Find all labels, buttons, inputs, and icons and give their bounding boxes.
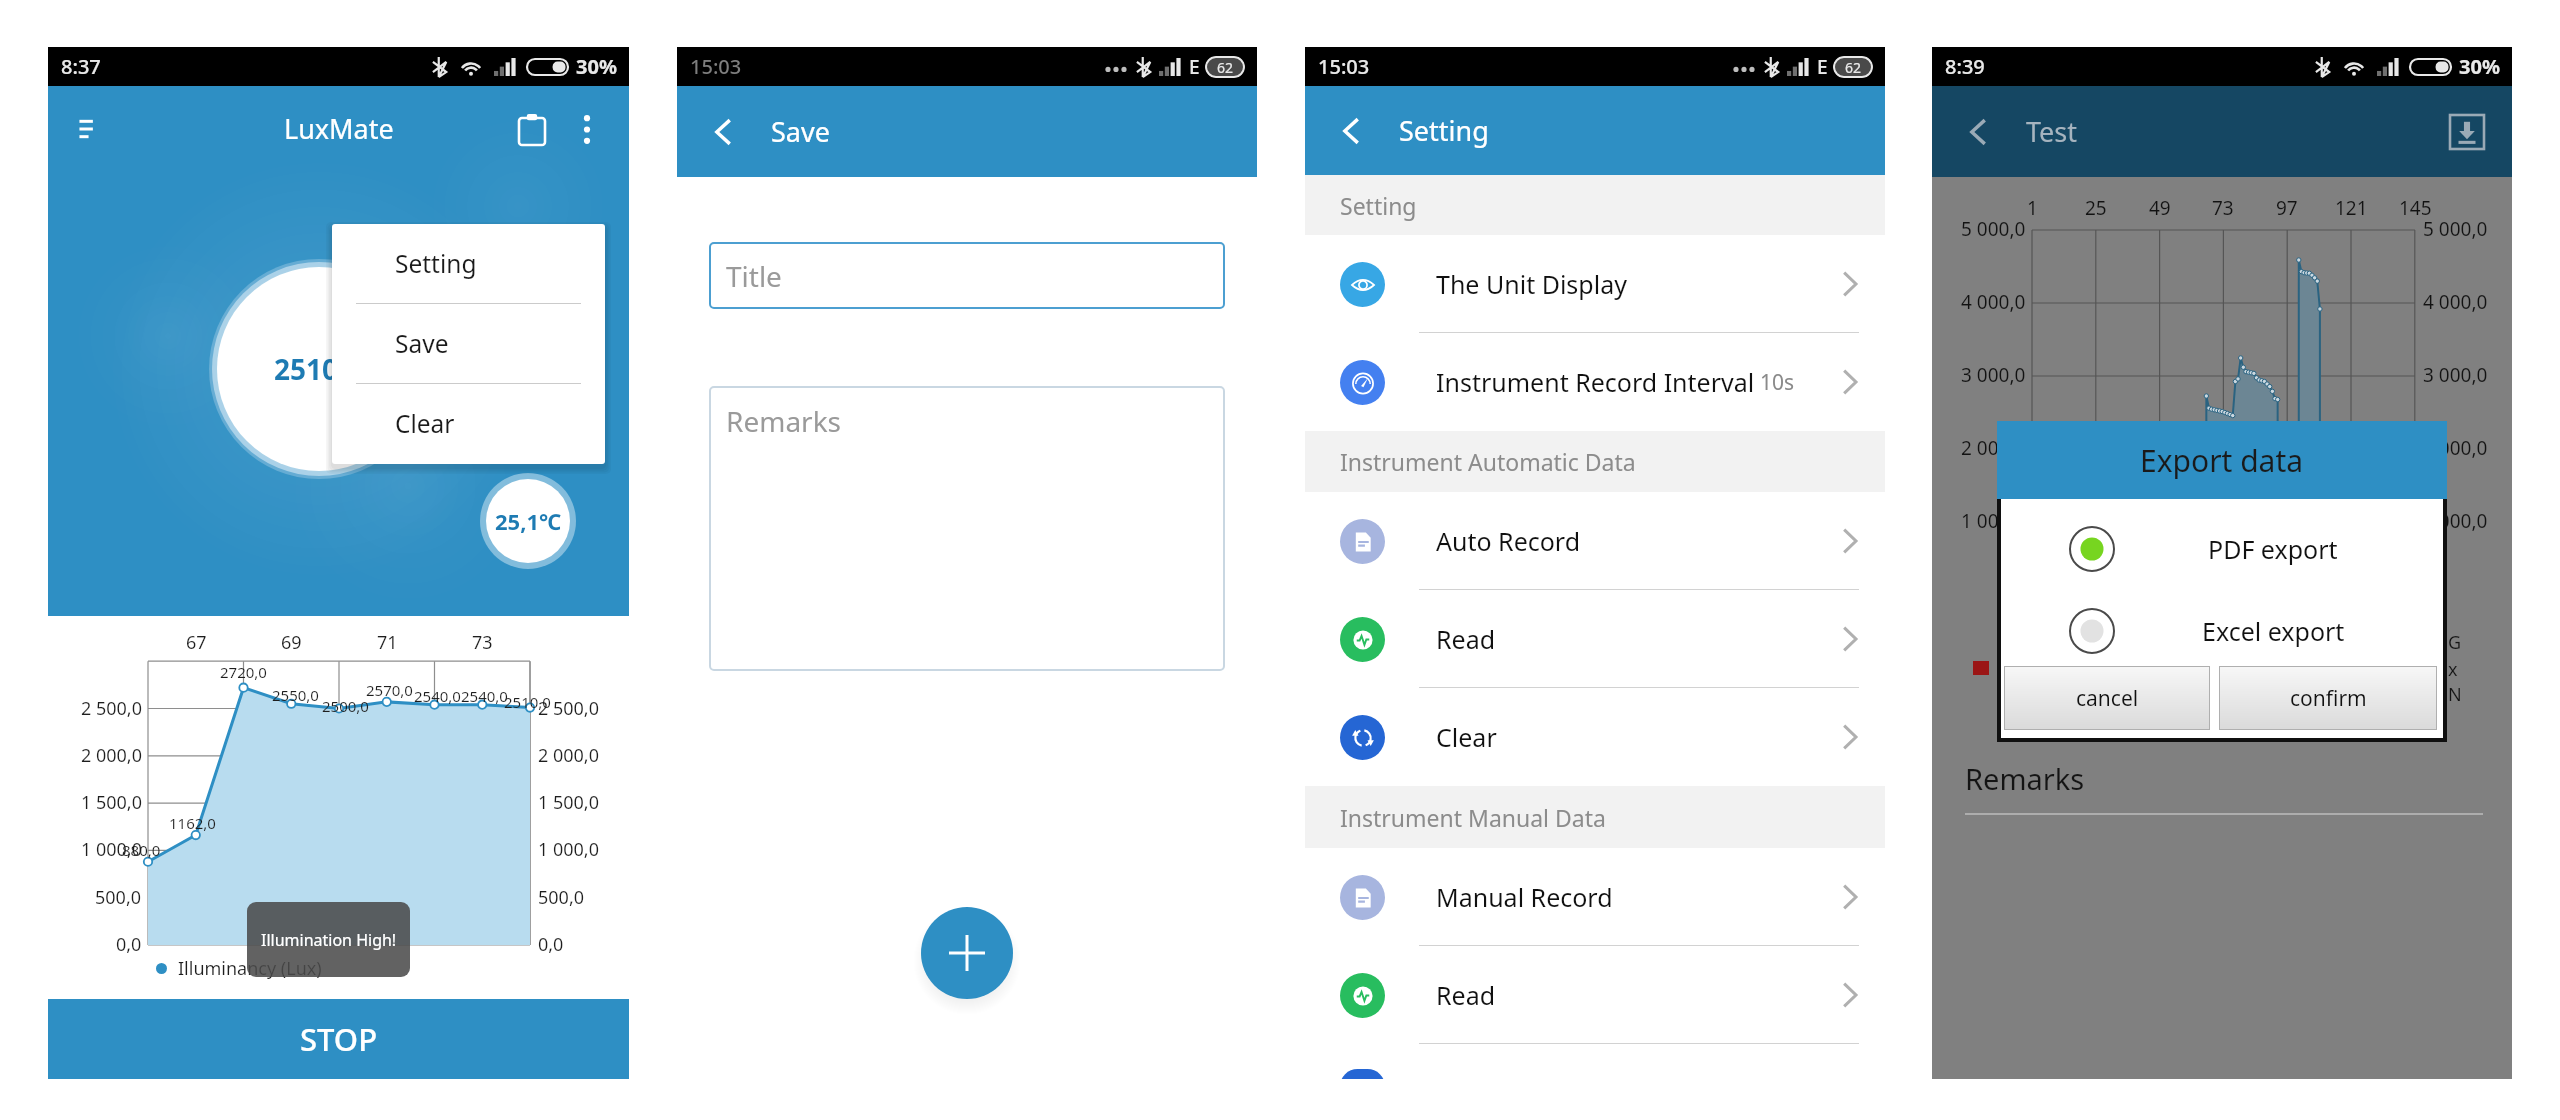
- staticText: 15:03: [690, 53, 742, 80]
- staticText: Read: [1436, 622, 1496, 656]
- staticText: 500,0: [538, 885, 585, 910]
- staticText: 1 000,0: [2423, 508, 2488, 534]
- staticText: x: [2448, 657, 2458, 679]
- staticText: 2540,0: [461, 686, 508, 706]
- button[interactable]: Manual Record: [1305, 848, 1885, 946]
- button[interactable]: Save: [332, 304, 605, 383]
- staticText: E: [1817, 54, 1828, 80]
- button[interactable]: Auto Record: [1305, 492, 1885, 590]
- staticText: 2550,0: [272, 685, 319, 705]
- staticText: Save: [395, 327, 449, 360]
- button[interactable]: Instrument Record Interval: [1305, 333, 1885, 431]
- staticText: 2 000,0: [81, 743, 142, 768]
- staticText: 67: [186, 630, 207, 655]
- button[interactable]: Excel export: [2001, 604, 2443, 658]
- button[interactable]: Back: [1954, 107, 2004, 157]
- staticText: 97: [2276, 195, 2298, 221]
- staticText: 25: [2085, 195, 2107, 221]
- staticText: G: [2448, 630, 2462, 652]
- button[interactable]: cancel: [2004, 666, 2210, 730]
- staticText: 3 000,0: [1961, 362, 2026, 388]
- staticText: 4 000,0: [2423, 289, 2488, 315]
- button[interactable]: Export: [2444, 109, 2490, 155]
- staticText: Title: [726, 257, 782, 295]
- button[interactable]: Clear: [332, 384, 605, 463]
- staticText: cancel: [2076, 684, 2139, 713]
- button[interactable]: PDF export: [2001, 522, 2443, 576]
- staticText: 1: [2027, 195, 2038, 221]
- staticText: 2 000,0: [1961, 435, 2026, 461]
- staticText: 2 000,0: [538, 743, 599, 768]
- staticText: Auto Record: [1436, 524, 1581, 558]
- staticText: Setting: [395, 247, 477, 280]
- button[interactable]: Read: [1305, 590, 1885, 688]
- staticText: N: [2448, 682, 2462, 704]
- staticText: 1 500,0: [538, 790, 599, 815]
- staticText: 2570,0: [366, 680, 413, 700]
- staticText: 2500,0: [322, 696, 369, 716]
- staticText: 2720,0: [220, 662, 267, 682]
- staticText: Save: [771, 113, 830, 150]
- staticText: 30%: [2459, 53, 2500, 80]
- staticText: Clear: [1436, 720, 1497, 754]
- staticText: 25,1℃: [495, 506, 562, 536]
- button[interactable]: Menu: [68, 107, 112, 151]
- staticText: Illuminancy (Lux): [178, 956, 322, 981]
- staticText: 121: [2335, 195, 2368, 221]
- staticText: 8:39: [1945, 53, 1985, 80]
- staticText: Setting: [1340, 190, 1417, 221]
- button[interactable]: More options: [565, 107, 609, 151]
- staticText: Instrument Automatic Data: [1340, 446, 1636, 477]
- staticText: Read: [1436, 978, 1496, 1012]
- staticText: Setting: [1399, 112, 1489, 149]
- staticText: 10s: [1760, 368, 1795, 397]
- staticText: 73: [2212, 195, 2234, 221]
- button[interactable]: Clipboard: [509, 106, 555, 152]
- staticText: 1 000,0: [81, 837, 142, 862]
- staticText: 2510,0: [504, 692, 551, 712]
- button[interactable]: The Unit Display: [1305, 235, 1885, 333]
- button[interactable]: STOP: [48, 999, 629, 1079]
- staticText: 1 000,0: [538, 837, 599, 862]
- button[interactable]: Remarks: [709, 386, 1225, 671]
- staticText: 73: [472, 630, 493, 655]
- button[interactable]: Read: [1305, 946, 1885, 1044]
- staticText: 4 000,0: [1961, 289, 2026, 315]
- staticText: 3 000,0: [2423, 362, 2488, 388]
- staticText: Export data: [2140, 440, 2304, 481]
- button[interactable]: Add: [921, 907, 1013, 999]
- staticText: Manual Record: [1436, 880, 1613, 914]
- button[interactable]: Back: [699, 107, 749, 157]
- staticText: 2 500,0: [81, 696, 142, 721]
- staticText: Instrument Record Interval: [1436, 365, 1755, 399]
- staticText: 5 000,0: [1961, 216, 2026, 242]
- staticText: 30%: [576, 53, 617, 80]
- staticText: 2540,0: [414, 686, 461, 706]
- button[interactable]: Title: [709, 242, 1225, 309]
- staticText: Remarks: [1965, 759, 2085, 798]
- staticText: 5 000,0: [2423, 216, 2488, 242]
- staticText: Instrument Manual Data: [1340, 802, 1606, 833]
- staticText: 62: [1217, 58, 1234, 77]
- staticText: 8:37: [61, 53, 101, 80]
- staticText: 69: [281, 630, 302, 655]
- staticText: 15:03: [1318, 53, 1370, 80]
- button[interactable]: Back: [1327, 106, 1377, 156]
- staticText: STOP: [300, 1018, 378, 1060]
- staticText: The Unit Display: [1436, 267, 1627, 301]
- button[interactable]: confirm: [2219, 666, 2437, 730]
- staticText: 1 000,0: [1961, 508, 2026, 534]
- staticText: 1162,0: [169, 813, 216, 833]
- staticText: 2510: [274, 350, 339, 388]
- staticText: 2 500,0: [538, 696, 599, 721]
- staticText: Illumination High!: [261, 929, 397, 951]
- staticText: Test: [2026, 113, 2078, 150]
- staticText: 2 000,0: [2423, 435, 2488, 461]
- staticText: 1 500,0: [81, 790, 142, 815]
- staticText: Remarks: [726, 402, 842, 440]
- staticText: E: [1189, 54, 1200, 80]
- staticText: 0,0: [116, 932, 142, 957]
- button[interactable]: Clear: [1305, 688, 1885, 786]
- button[interactable]: Setting: [332, 224, 605, 303]
- staticText: 71: [377, 630, 398, 655]
